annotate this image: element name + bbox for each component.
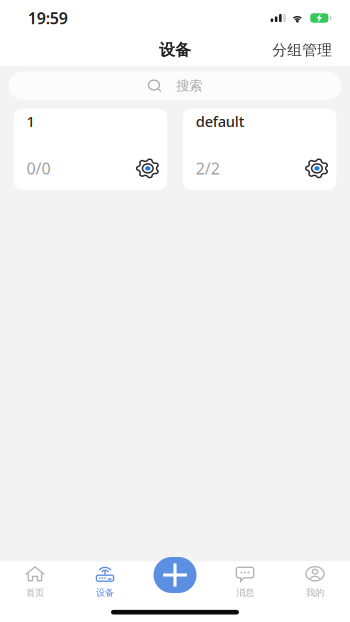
button[interactable]: 我的 <box>280 561 350 611</box>
button[interactable]: 设备 <box>70 561 140 611</box>
button[interactable]: Add <box>153 557 196 593</box>
button[interactable]: 搜索 <box>9 71 341 100</box>
button[interactable]: 1 <box>14 108 167 190</box>
button[interactable]: 首页 <box>0 561 70 611</box>
staticText: 设备 <box>159 40 191 60</box>
button[interactable]: default <box>183 108 336 190</box>
button[interactable]: 消息 <box>210 561 280 611</box>
staticText: 搜索 <box>176 78 202 94</box>
staticText: default <box>196 111 245 131</box>
staticText: 1 <box>27 111 35 131</box>
staticText: 0/0 <box>27 158 51 179</box>
staticText: 消息 <box>236 587 254 598</box>
staticText: 设备 <box>96 587 114 598</box>
staticText: 分组管理 <box>272 41 332 59</box>
staticText: 我的 <box>306 587 324 598</box>
staticText: 19:59 <box>28 7 68 29</box>
button[interactable]: 分组管理 <box>264 34 340 66</box>
staticText: 首页 <box>26 587 44 598</box>
staticText: 2/2 <box>196 158 220 179</box>
